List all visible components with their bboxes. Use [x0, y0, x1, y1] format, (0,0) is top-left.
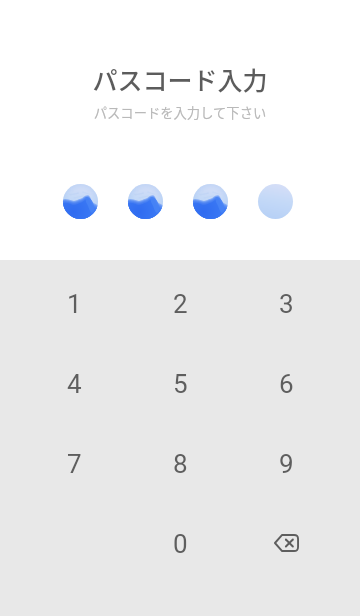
staticText: 6: [279, 369, 294, 399]
button[interactable]: 5: [127, 344, 233, 424]
staticText: 8: [173, 449, 188, 479]
button[interactable]: 1: [21, 264, 127, 344]
staticText: 7: [67, 449, 82, 479]
staticText: 4: [67, 369, 82, 399]
staticText: 2: [173, 289, 188, 319]
button[interactable]: 3: [233, 264, 339, 344]
button[interactable]: 7: [21, 424, 127, 504]
button[interactable]: 6: [233, 344, 339, 424]
button[interactable]: 2: [127, 264, 233, 344]
staticText: パスコードを入力して下さい: [0, 103, 360, 122]
staticText: 9: [279, 449, 294, 479]
button[interactable]: 0: [127, 504, 233, 584]
button[interactable]: 9: [233, 424, 339, 504]
staticText: 3: [279, 289, 294, 319]
staticText: 0: [173, 529, 188, 559]
staticText: パスコード入力: [0, 61, 360, 97]
staticText: 5: [173, 369, 188, 399]
button[interactable]: 4: [21, 344, 127, 424]
staticText: 1: [67, 289, 82, 319]
button[interactable]: 8: [127, 424, 233, 504]
button[interactable]: Delete: [233, 504, 339, 584]
